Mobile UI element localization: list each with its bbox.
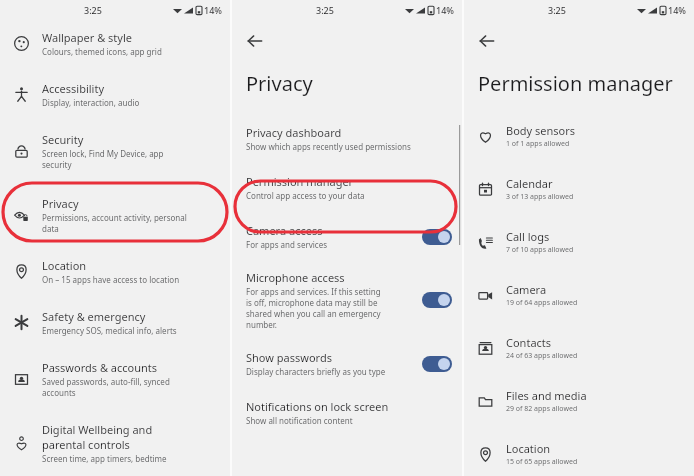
staticText: Camera access <box>246 223 323 238</box>
staticText: 3:25 <box>84 4 102 16</box>
staticText: Privacy dashboard <box>246 125 342 140</box>
staticText: Screen lock, Find My Device, app securit… <box>42 148 164 170</box>
staticText: Digital Wellbeing and parental controls <box>42 422 153 452</box>
staticText: Permission manager <box>478 70 673 97</box>
button[interactable]: Files and media <box>464 382 694 420</box>
staticText: For apps and services. If this setting i… <box>246 286 381 330</box>
button[interactable]: Digital Wellbeing and parental controls <box>0 416 230 470</box>
button[interactable]: Permission manager <box>232 168 462 207</box>
button[interactable]: Back <box>474 28 500 54</box>
button[interactable]: Calendar <box>464 170 694 208</box>
button[interactable]: Privacy dashboard <box>232 119 462 158</box>
staticText: Colours, themed icons, app grid <box>42 46 162 57</box>
button[interactable]: Security <box>0 126 230 176</box>
staticText: 7 of 10 apps allowed <box>506 245 574 255</box>
staticText: Camera <box>506 282 547 297</box>
staticText: 14% <box>436 4 454 16</box>
staticText: Show which apps recently used permission… <box>246 141 411 152</box>
staticText: Show all notification content <box>246 415 353 426</box>
staticText: Location <box>42 258 87 273</box>
button[interactable]: Call logs <box>464 223 694 261</box>
button[interactable]: Accessibility <box>0 75 230 114</box>
button[interactable]: Show passwords <box>232 344 462 383</box>
staticText: Calendar <box>506 176 553 191</box>
button[interactable]: Toggle <box>422 356 452 372</box>
staticText: Wallpaper & style <box>42 30 132 45</box>
staticText: Emergency SOS, medical info, alerts <box>42 325 177 336</box>
button[interactable]: Contacts <box>464 329 694 367</box>
staticText: Display characters briefly as you type <box>246 366 386 377</box>
staticText: Saved passwords, auto-fill, synced accou… <box>42 376 170 398</box>
staticText: 14% <box>668 4 686 16</box>
staticText: 3:25 <box>316 4 334 16</box>
staticText: Security <box>42 132 84 147</box>
staticText: 24 of 63 apps allowed <box>506 351 578 361</box>
staticText: Privacy <box>42 196 79 211</box>
staticText: Microphone access <box>246 270 345 285</box>
staticText: Contacts <box>506 335 552 350</box>
staticText: Call logs <box>506 229 550 244</box>
staticText: For apps and services <box>246 239 328 250</box>
button[interactable]: Passwords & accounts <box>0 354 230 404</box>
button[interactable]: Camera <box>464 276 694 314</box>
button[interactable]: Location <box>0 252 230 291</box>
staticText: Control app access to your data <box>246 190 365 201</box>
staticText: 14% <box>204 4 222 16</box>
staticText: Permissions, account activity, personal … <box>42 212 187 234</box>
button[interactable]: Microphone access <box>232 264 462 336</box>
button[interactable]: Back <box>242 28 268 54</box>
staticText: 19 of 64 apps allowed <box>506 298 578 308</box>
staticText: Notifications on lock screen <box>246 399 389 414</box>
staticText: Passwords & accounts <box>42 360 158 375</box>
staticText: Files and media <box>506 388 587 403</box>
button[interactable]: Notifications on lock screen <box>232 393 462 432</box>
button[interactable]: Safety & emergency <box>0 303 230 342</box>
staticText: Safety & emergency <box>42 309 146 324</box>
staticText: 1 of 1 apps allowed <box>506 139 570 149</box>
staticText: Accessibility <box>42 81 105 96</box>
staticText: On – 15 apps have access to location <box>42 274 180 285</box>
staticText: Display, interaction, audio <box>42 97 140 108</box>
button[interactable]: Wallpaper & style <box>0 24 230 63</box>
staticText: 15 of 65 apps allowed <box>506 457 578 467</box>
button[interactable]: Toggle <box>422 292 452 308</box>
button[interactable]: Location <box>464 435 694 473</box>
staticText: 3:25 <box>548 4 566 16</box>
staticText: 29 of 82 apps allowed <box>506 404 578 414</box>
button[interactable]: Privacy <box>0 190 230 240</box>
staticText: Show passwords <box>246 350 332 365</box>
button[interactable]: Toggle <box>422 229 452 245</box>
button[interactable]: Body sensors <box>464 117 694 155</box>
button[interactable]: Camera access <box>232 217 462 256</box>
staticText: Body sensors <box>506 123 576 138</box>
staticText: Permission manager <box>246 174 354 189</box>
staticText: Location <box>506 441 551 456</box>
staticText: Screen time, app timers, bedtime <box>42 453 167 464</box>
staticText: Privacy <box>246 70 313 97</box>
staticText: 3 of 13 apps allowed <box>506 192 574 202</box>
